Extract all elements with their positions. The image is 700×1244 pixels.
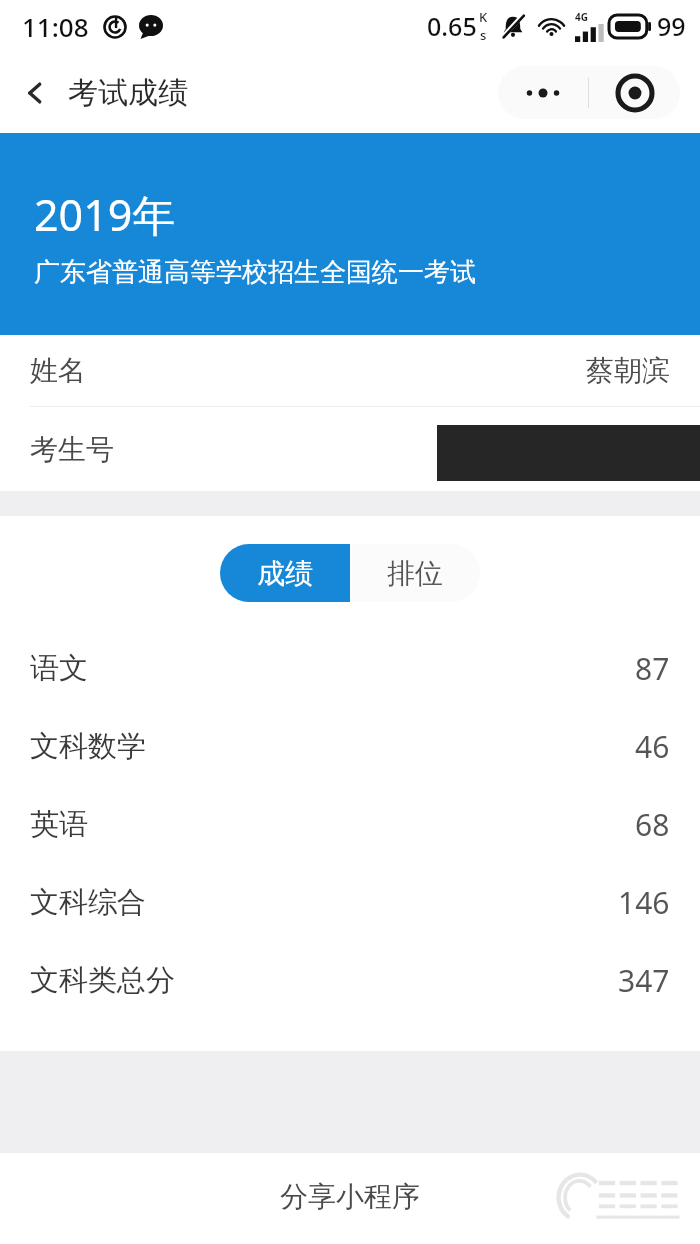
staticText: 87 (635, 648, 670, 689)
staticText: 68 (635, 804, 670, 845)
staticText: 广东省普通高等学校招生全国统一考试 (34, 256, 476, 289)
staticText: 英语 (30, 806, 88, 843)
staticText: 46 (635, 726, 670, 767)
staticText: 蔡朝滨 (586, 353, 670, 388)
button[interactable]: 排位 (350, 544, 480, 602)
staticText: 11:08 (22, 9, 89, 44)
button[interactable]: 姓名 (0, 335, 700, 406)
button[interactable]: 分享小程序 (0, 1153, 700, 1240)
staticText: 语文 (30, 650, 88, 687)
staticText: 分享小程序 (280, 1179, 420, 1214)
staticText: 排位 (387, 556, 443, 591)
button[interactable]: 语文 (0, 629, 700, 707)
button[interactable]: 文科数学 (0, 707, 700, 785)
button[interactable]: More (498, 66, 588, 119)
staticText: 文科数学 (30, 728, 146, 765)
button[interactable]: Back (0, 64, 204, 122)
staticText: 146 (618, 882, 670, 923)
button[interactable]: 文科类总分 (0, 941, 700, 1019)
button[interactable]: 文科综合 (0, 863, 700, 941)
other: Back (22, 80, 48, 106)
staticText: 文科类总分 (30, 962, 175, 999)
staticText: 成绩 (257, 556, 313, 591)
staticText: 0.65 (427, 9, 477, 43)
staticText: 347 (618, 960, 670, 1001)
button[interactable]: 英语 (0, 785, 700, 863)
staticText: 考试成绩 (68, 74, 188, 112)
staticText: K (479, 8, 488, 26)
button[interactable]: 考生号 (0, 407, 700, 491)
button[interactable]: Close mini program (589, 66, 680, 119)
button[interactable]: 成绩 (220, 544, 350, 602)
staticText: 2019年 (34, 185, 176, 244)
staticText: 考生号 (30, 432, 114, 467)
staticText: 文科综合 (30, 884, 146, 921)
staticText: 姓名 (30, 353, 86, 388)
staticText: 99 (657, 9, 686, 43)
staticText: s (480, 26, 487, 44)
staticText: 4G (575, 10, 588, 24)
